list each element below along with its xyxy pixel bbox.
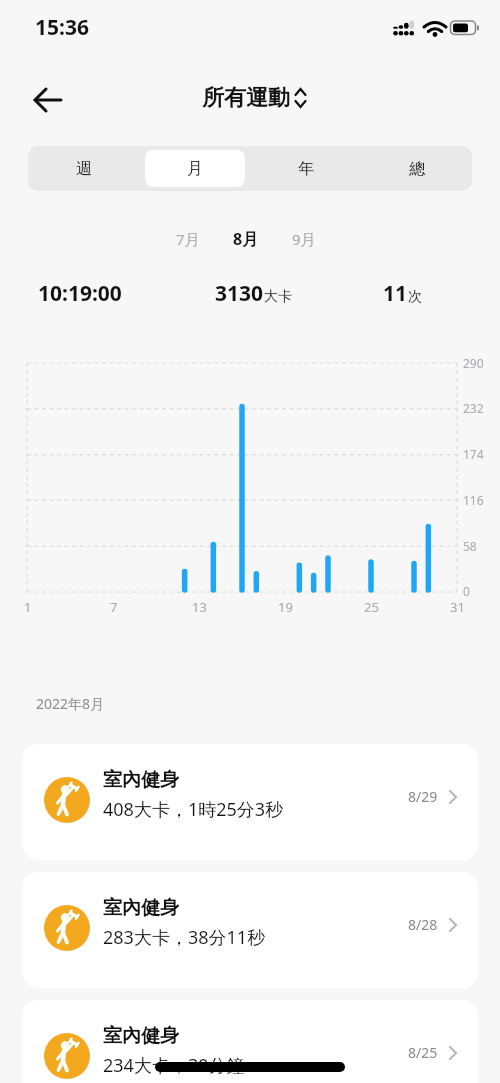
- button[interactable]: 9月: [284, 224, 324, 254]
- staticText: 0: [463, 583, 470, 599]
- button[interactable]: 7月: [168, 224, 208, 254]
- staticText: 9月: [292, 229, 316, 249]
- button[interactable]: 室內健身: [22, 744, 478, 860]
- staticText: 大卡: [264, 288, 292, 306]
- staticText: 8/28: [408, 915, 438, 934]
- staticText: 10:19:00: [38, 279, 122, 308]
- staticText: 週: [76, 159, 92, 179]
- button[interactable]: [24, 84, 68, 116]
- staticText: 7月: [176, 229, 200, 249]
- staticText: 15:36: [35, 13, 89, 42]
- staticText: 總: [409, 159, 425, 179]
- staticText: 234大卡，39分鐘: [103, 1053, 245, 1078]
- staticText: 290: [463, 355, 484, 371]
- staticText: 7: [110, 598, 118, 616]
- staticText: 2022年8月: [36, 694, 105, 713]
- staticText: 年: [298, 159, 314, 179]
- staticText: 次: [408, 288, 422, 306]
- staticText: 8/29: [408, 787, 438, 806]
- button[interactable]: 室內健身: [22, 872, 478, 988]
- staticText: 408大卡，1時25分3秒: [103, 797, 284, 822]
- button[interactable]: 週: [28, 146, 139, 191]
- button[interactable]: 所有運動: [202, 84, 307, 112]
- staticText: 月: [187, 159, 203, 179]
- staticText: 19: [278, 598, 293, 616]
- staticText: 232: [463, 400, 484, 416]
- staticText: 174: [463, 446, 484, 462]
- staticText: 室內健身: [103, 1024, 179, 1048]
- staticText: 3130: [215, 279, 264, 308]
- button[interactable]: 年: [250, 146, 361, 191]
- staticText: 室內健身: [103, 768, 179, 792]
- staticText: 11: [383, 279, 408, 308]
- button[interactable]: 總: [361, 146, 472, 191]
- staticText: 1: [24, 598, 32, 616]
- staticText: 31: [450, 598, 465, 616]
- staticText: 283大卡，38分11秒: [103, 925, 266, 950]
- button[interactable]: 月: [139, 146, 250, 191]
- staticText: 58: [463, 538, 477, 554]
- staticText: 8/25: [408, 1043, 438, 1062]
- staticText: 116: [463, 492, 484, 508]
- staticText: 8月: [233, 228, 259, 250]
- staticText: 所有運動: [202, 84, 290, 112]
- button[interactable]: 室內健身: [22, 1000, 478, 1083]
- button[interactable]: 8月: [226, 223, 266, 255]
- staticText: 25: [364, 598, 379, 616]
- staticText: 室內健身: [103, 896, 179, 920]
- staticText: 13: [192, 598, 207, 616]
